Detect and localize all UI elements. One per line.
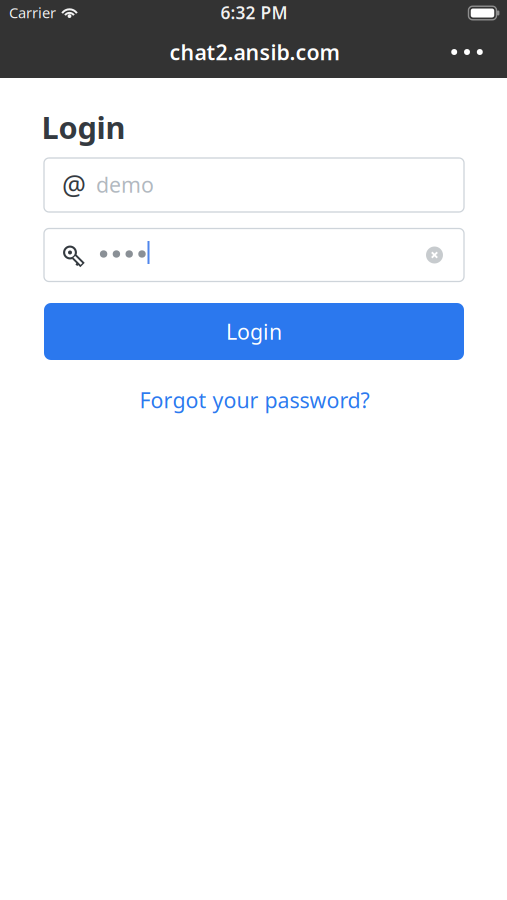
staticText: Forgot your password? [139, 386, 369, 414]
staticText: @ [62, 167, 86, 202]
button[interactable]: Forgot your password? [139, 386, 369, 414]
staticText: Login [41, 107, 125, 147]
button[interactable]: Login [44, 303, 464, 360]
staticText: Carrier [9, 3, 56, 22]
staticText: chat2.ansib.com [169, 38, 339, 66]
staticText: Login [226, 317, 282, 346]
button[interactable]: Clear text [426, 246, 443, 263]
staticText: demo [96, 170, 154, 199]
button[interactable]: More [445, 37, 489, 67]
staticText: 6:32 PM [220, 1, 287, 24]
